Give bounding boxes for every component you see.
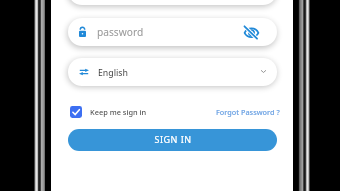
staticText: English [98, 67, 129, 79]
button[interactable]: Keep me sign in [68, 103, 149, 120]
other: Choose language [261, 70, 266, 73]
staticText: Forgot Password ? [216, 107, 280, 117]
staticText: Keep me sign in [90, 107, 147, 117]
button[interactable] [68, 0, 277, 5]
staticText: password [97, 25, 144, 39]
staticText: SIGN IN [154, 133, 192, 145]
button[interactable]: SIGN IN [68, 129, 277, 151]
button[interactable]: Forgot Password ? [215, 104, 287, 119]
button[interactable]: English [68, 58, 277, 86]
button[interactable]: password [68, 18, 277, 46]
button[interactable]: Show password [244, 26, 259, 39]
